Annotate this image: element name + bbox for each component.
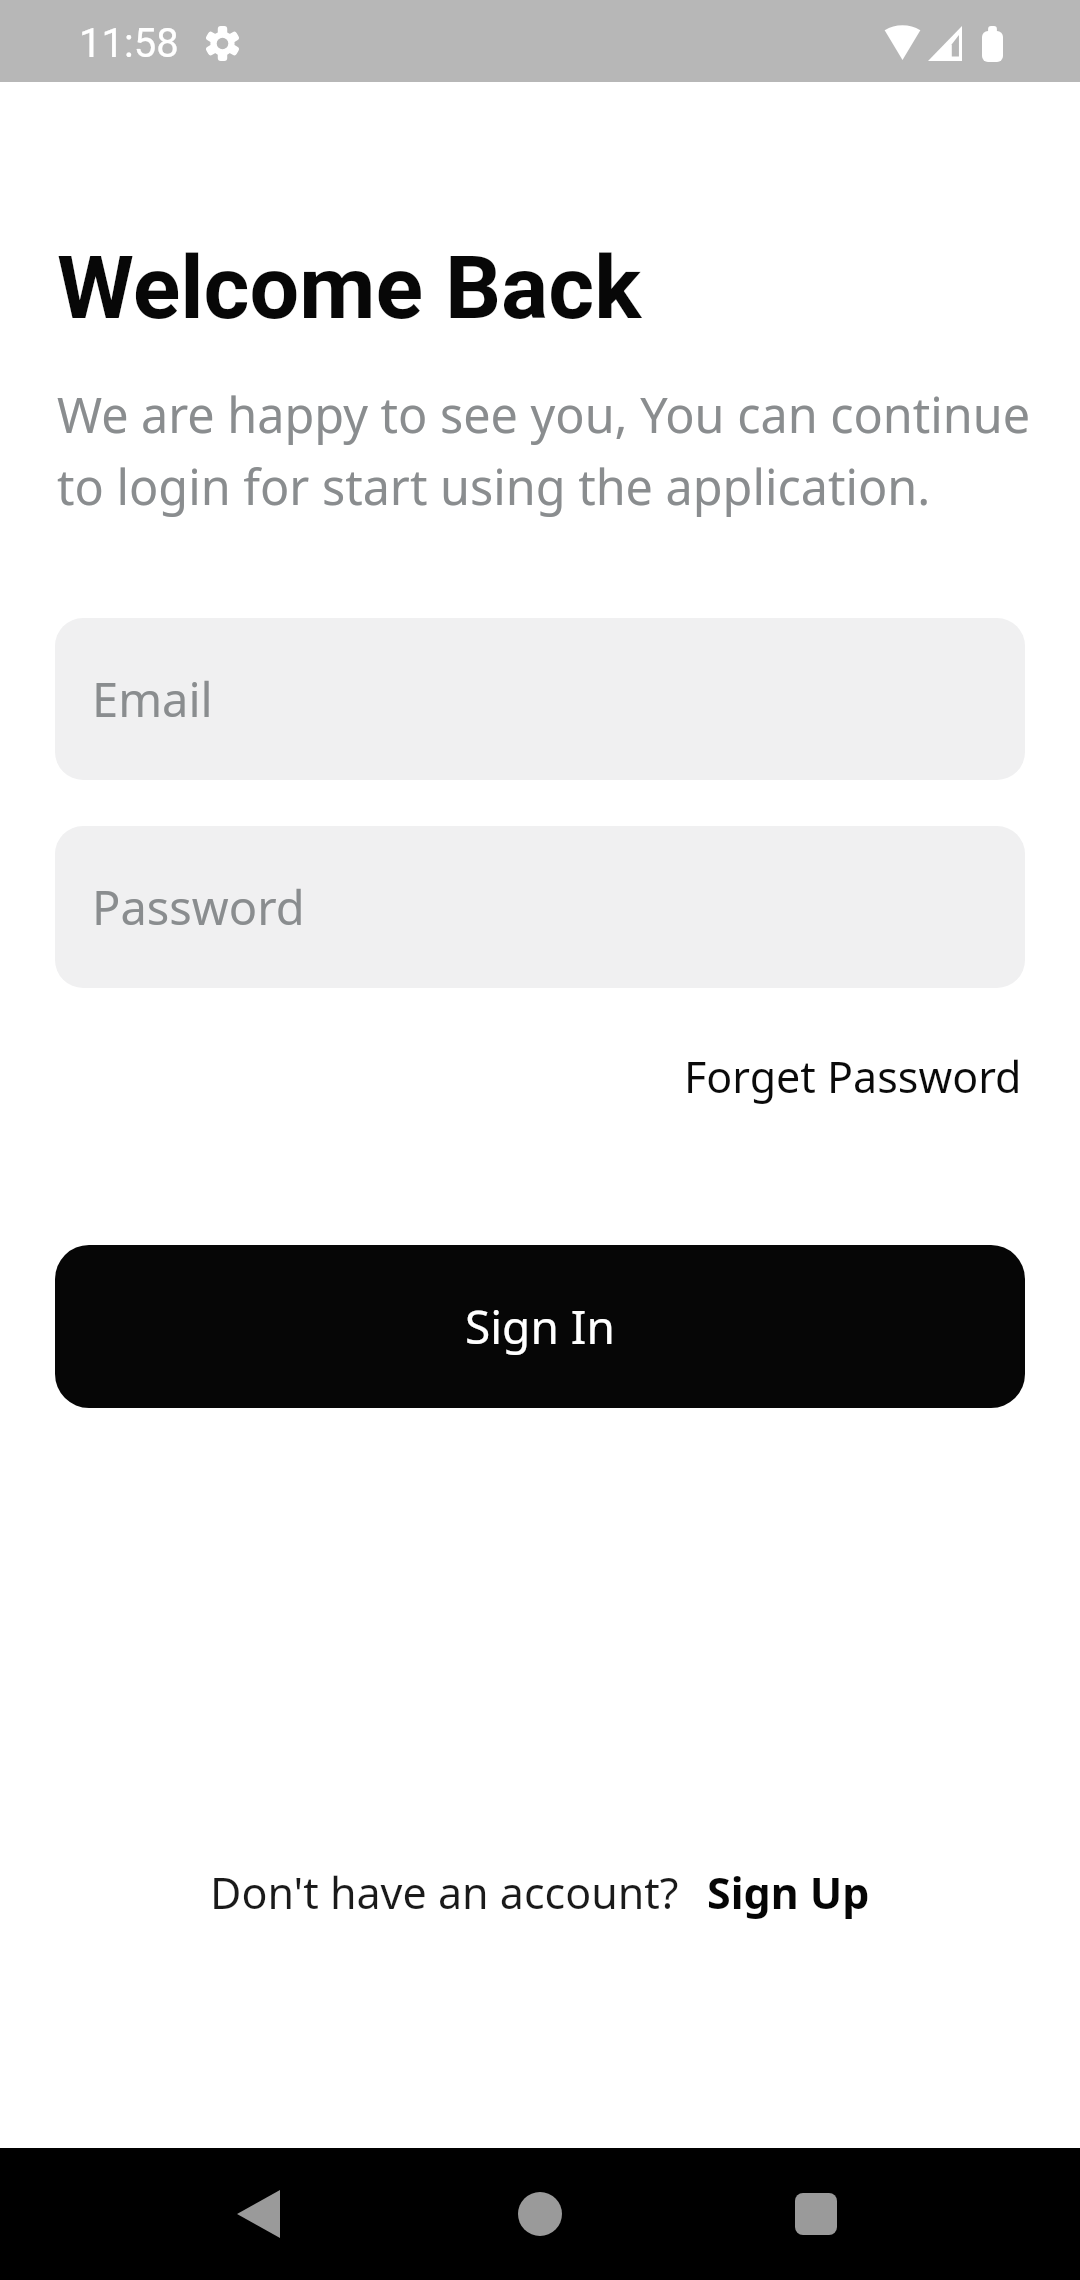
staticText: Password xyxy=(92,875,305,939)
button[interactable]: Forget Password xyxy=(684,1047,1022,1106)
button[interactable]: Email xyxy=(55,618,1025,780)
button[interactable] xyxy=(518,2192,562,2236)
button[interactable] xyxy=(795,2193,837,2235)
staticText: Don't have an account? xyxy=(210,1863,679,1922)
button[interactable]: Sign In xyxy=(55,1245,1025,1408)
button[interactable] xyxy=(237,2190,280,2238)
staticText: Welcome Back xyxy=(57,236,642,339)
staticText: Sign In xyxy=(465,1295,615,1358)
staticText: We are happy to see you, You can continu… xyxy=(57,381,1031,519)
staticText: Email xyxy=(92,667,213,731)
staticText: 11:58 xyxy=(79,20,179,67)
button[interactable]: Password xyxy=(55,826,1025,988)
button[interactable]: Sign Up xyxy=(707,1863,870,1922)
